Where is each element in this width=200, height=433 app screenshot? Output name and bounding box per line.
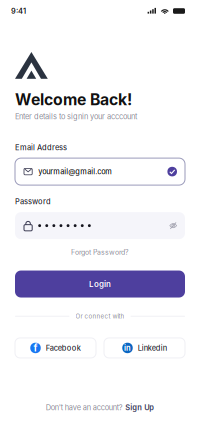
staticText: Enter details to signin your acccount (15, 112, 137, 121)
staticText: Sign Up (125, 403, 154, 412)
staticText: Or connect with (75, 312, 124, 320)
button[interactable]: Don't have an account? (46, 403, 154, 412)
staticText: Email Address (15, 143, 67, 152)
staticText: Don't have an account? (46, 403, 123, 412)
button[interactable]: in (104, 338, 185, 358)
staticText: Facebook (46, 343, 81, 352)
staticText: Login (89, 279, 111, 289)
staticText: 9:41 (11, 6, 26, 15)
staticText: Forgot Password? (71, 248, 129, 256)
button[interactable]: Login (15, 270, 185, 297)
button[interactable]: f (15, 338, 96, 358)
staticText: f (33, 342, 37, 354)
staticText: Linkedin (138, 343, 167, 352)
staticText: Password (15, 197, 51, 206)
button[interactable]: Forgot Password? (71, 248, 129, 256)
staticText: yourmail@gmail.com (38, 167, 112, 176)
staticText: Welcome Back! (15, 90, 132, 109)
staticText: in (124, 343, 131, 352)
